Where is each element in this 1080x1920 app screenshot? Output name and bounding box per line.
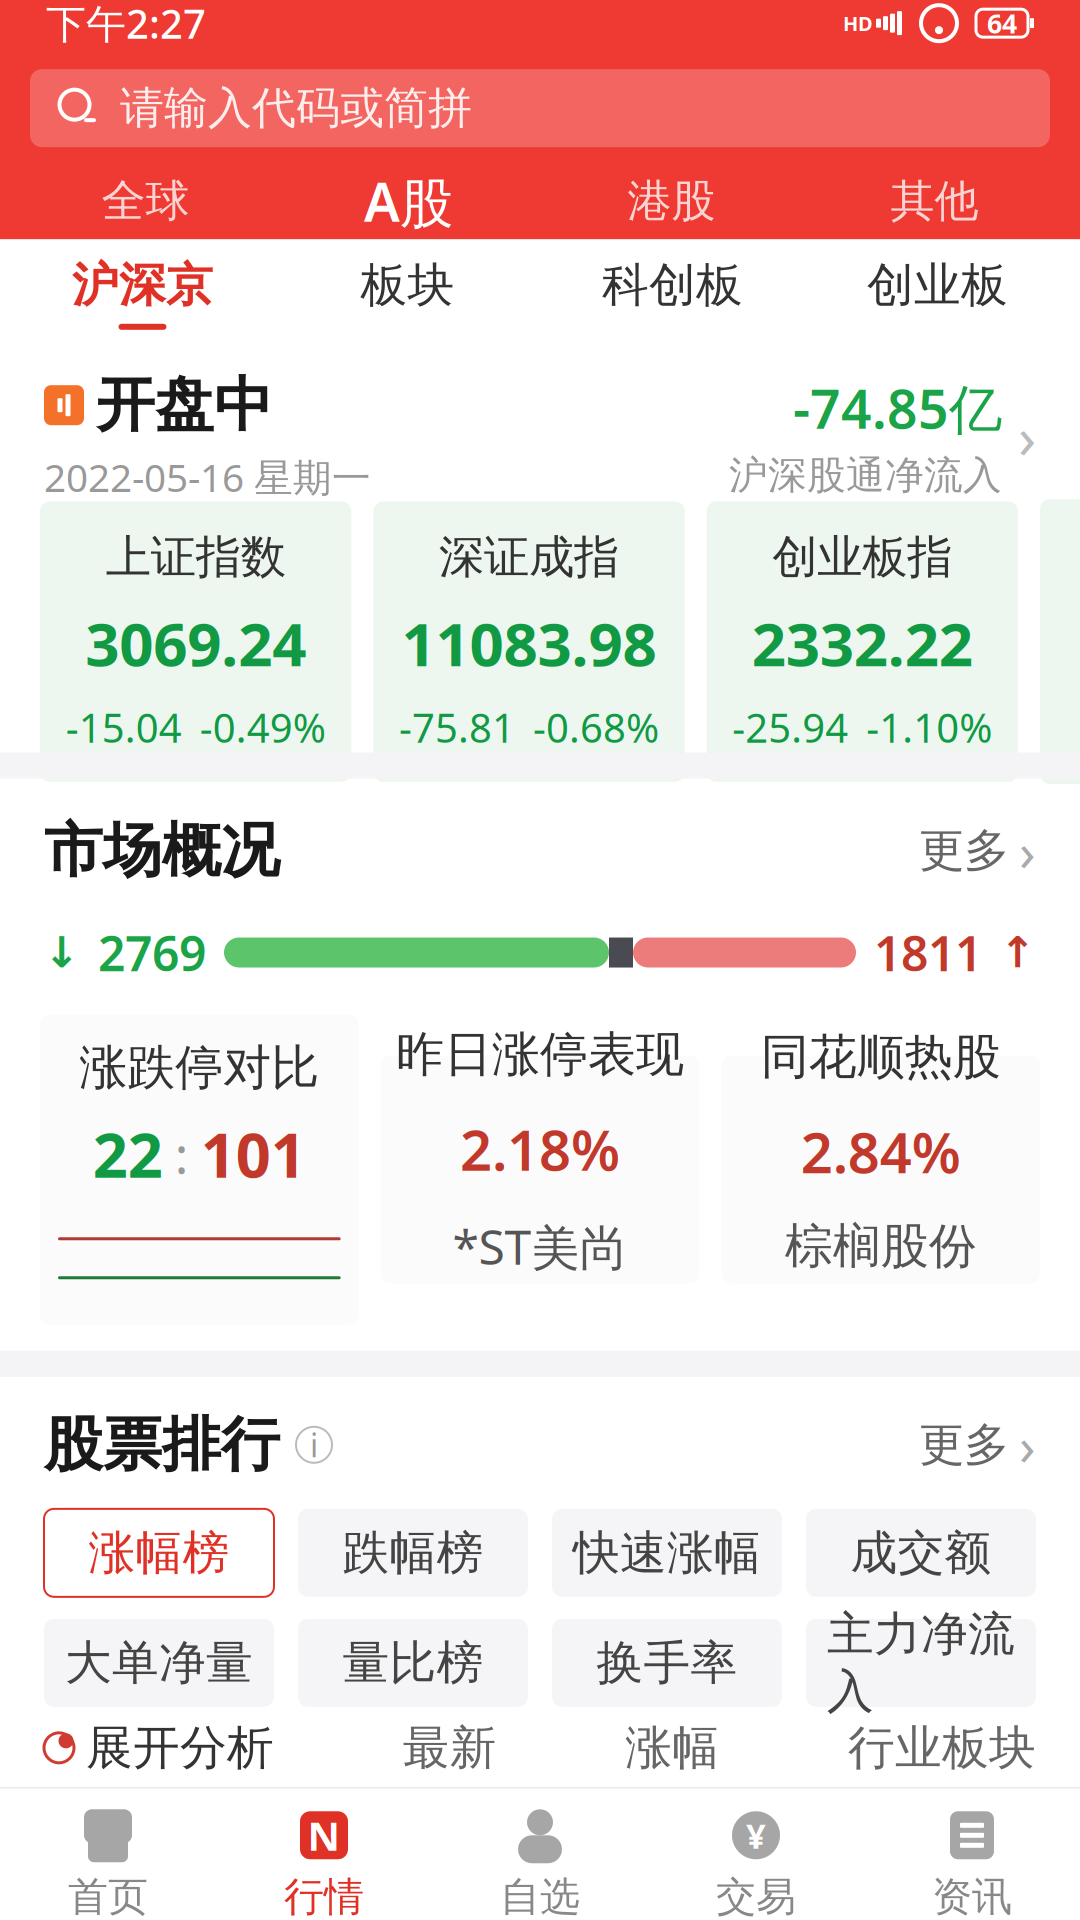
staticText: 涨幅榜 bbox=[88, 1524, 229, 1581]
staticText: i bbox=[310, 1424, 318, 1466]
staticText: 64 bbox=[987, 5, 1017, 41]
button[interactable]: 涨跌停对比 bbox=[40, 1014, 359, 1325]
staticText: N bbox=[307, 1809, 340, 1862]
staticText: 同花顺热股 bbox=[761, 1027, 1001, 1086]
staticText: 更多 bbox=[919, 823, 1009, 878]
button[interactable]: 快速涨幅 bbox=[552, 1509, 782, 1597]
staticText: 市场概况 bbox=[44, 815, 280, 887]
button[interactable]: 量比榜 bbox=[298, 1619, 528, 1707]
button[interactable]: 资讯 bbox=[864, 1808, 1080, 1920]
button[interactable]: 行业板块 bbox=[848, 1719, 1036, 1776]
staticText: 资讯 bbox=[932, 1872, 1012, 1920]
button[interactable]: 涨幅 bbox=[625, 1719, 719, 1776]
button[interactable]: 上证指数 bbox=[40, 501, 351, 782]
staticText: 港股 bbox=[627, 174, 715, 228]
staticText: 棕榈股份 bbox=[785, 1217, 977, 1276]
button[interactable]: 科创板 bbox=[540, 239, 805, 347]
staticText: -0.49% bbox=[200, 701, 326, 754]
button[interactable]: 涨幅榜 bbox=[44, 1509, 274, 1597]
staticText: -25.94 bbox=[732, 701, 848, 754]
staticText: 2769 bbox=[98, 921, 206, 984]
button[interactable]: 创业板 bbox=[805, 239, 1070, 347]
staticText: HD bbox=[843, 10, 873, 36]
staticText: ↓ bbox=[44, 928, 80, 977]
button[interactable]: 最新 bbox=[403, 1719, 497, 1776]
staticText: -75.81 bbox=[399, 701, 515, 754]
button[interactable]: ¥ bbox=[648, 1808, 864, 1920]
button[interactable]: 自选 bbox=[432, 1808, 648, 1920]
staticText: 深证成指 bbox=[439, 529, 619, 585]
staticText: -0.68% bbox=[533, 701, 659, 754]
button[interactable]: 展开分析 bbox=[44, 1719, 274, 1776]
staticText: *ST美尚 bbox=[452, 1214, 627, 1278]
button[interactable]: 请输入代码或简拼 bbox=[30, 69, 1050, 147]
staticText: -15.04 bbox=[66, 701, 182, 754]
staticText: -1.10% bbox=[866, 701, 992, 754]
staticText: 22 bbox=[93, 1113, 163, 1195]
button[interactable]: 昨日涨停表现 bbox=[381, 1056, 699, 1284]
staticText: 沪深京 bbox=[72, 256, 213, 314]
staticText: › bbox=[1018, 397, 1036, 475]
staticText: 跌幅榜 bbox=[342, 1524, 483, 1581]
staticText: 涨跌停对比 bbox=[79, 1038, 319, 1097]
staticText: 2.18% bbox=[460, 1112, 620, 1186]
button[interactable]: 港股 bbox=[540, 163, 803, 239]
button[interactable]: 开盘中 bbox=[0, 347, 1080, 503]
staticText: 创业板指 bbox=[772, 529, 952, 585]
staticText: 最新 bbox=[403, 1719, 497, 1776]
button[interactable]: 成交额 bbox=[806, 1509, 1036, 1597]
staticText: 大单净量 bbox=[65, 1634, 253, 1691]
staticText: 涨幅 bbox=[625, 1719, 719, 1776]
button[interactable]: 换手率 bbox=[552, 1619, 782, 1707]
button[interactable]: 全球 bbox=[14, 163, 277, 239]
staticText: 昨日涨停表现 bbox=[396, 1025, 684, 1084]
button[interactable]: 沪深京 bbox=[10, 239, 275, 347]
button[interactable]: 首页 bbox=[0, 1808, 216, 1920]
button[interactable]: A股 bbox=[277, 163, 540, 239]
button[interactable]: 主力净流入 bbox=[806, 1619, 1036, 1707]
button[interactable]: N bbox=[216, 1808, 432, 1920]
staticText: 股票排行 bbox=[44, 1409, 280, 1481]
staticText: 板块 bbox=[360, 256, 454, 314]
staticText: 换手率 bbox=[596, 1634, 737, 1691]
staticText: 行业板块 bbox=[848, 1719, 1036, 1776]
staticText: A股 bbox=[364, 166, 453, 237]
staticText: › bbox=[1019, 1409, 1036, 1480]
staticText: 沪深股通净流入 bbox=[729, 451, 1002, 499]
staticText: ¥ bbox=[746, 1812, 766, 1858]
staticText: 2332.22 bbox=[752, 603, 973, 683]
staticText: 全球 bbox=[101, 174, 189, 228]
button[interactable]: 大单净量 bbox=[44, 1619, 274, 1707]
staticText: 交易 bbox=[716, 1872, 796, 1920]
staticText: : bbox=[175, 1120, 189, 1188]
staticText: 11083.98 bbox=[401, 603, 656, 683]
staticText: 科创板 bbox=[602, 256, 743, 314]
button[interactable]: 深证成指 bbox=[373, 501, 685, 782]
button[interactable]: 更多 bbox=[919, 1409, 1036, 1480]
staticText: 行情 bbox=[284, 1872, 364, 1920]
staticText: 2.84% bbox=[801, 1114, 961, 1189]
button[interactable]: 板块 bbox=[275, 239, 540, 347]
staticText: 2022-05-16 星期一 bbox=[44, 451, 371, 502]
button[interactable]: 其他 bbox=[803, 163, 1066, 239]
staticText: 成交额 bbox=[850, 1524, 991, 1581]
staticText: 101 bbox=[201, 1113, 306, 1195]
staticText: 更多 bbox=[919, 1417, 1009, 1473]
staticText: 首页 bbox=[68, 1872, 148, 1920]
staticText: -74.85亿 bbox=[793, 373, 1002, 443]
staticText: 上证指数 bbox=[106, 529, 286, 585]
staticText: 展开分析 bbox=[86, 1719, 274, 1776]
button[interactable]: 创业板指 bbox=[707, 501, 1018, 782]
staticText: 下午2:27 bbox=[46, 0, 206, 50]
button[interactable]: 同花顺热股 bbox=[721, 1056, 1040, 1284]
button[interactable]: 跌幅榜 bbox=[298, 1509, 528, 1597]
staticText: 3069.24 bbox=[85, 603, 306, 683]
staticText: 量比榜 bbox=[342, 1634, 483, 1691]
staticText: 自选 bbox=[500, 1872, 580, 1920]
staticText: 1811 bbox=[874, 921, 982, 984]
staticText: 快速涨幅 bbox=[573, 1524, 761, 1581]
button[interactable]: 更多 bbox=[919, 815, 1036, 886]
staticText: 其他 bbox=[890, 174, 978, 228]
staticText: › bbox=[1019, 815, 1036, 886]
